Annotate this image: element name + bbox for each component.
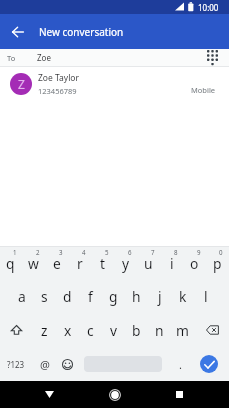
staticText: b: [132, 321, 141, 340]
staticText: u: [144, 254, 153, 273]
button[interactable]: b: [125, 313, 148, 347]
button[interactable]: p: [206, 247, 228, 280]
staticText: 6: [128, 248, 132, 256]
staticText: @: [40, 357, 50, 372]
staticText: 5: [105, 248, 109, 256]
button[interactable]: t: [91, 247, 114, 280]
button[interactable]: s: [33, 280, 56, 313]
button[interactable]: [194, 313, 228, 347]
staticText: 2: [36, 248, 40, 256]
staticText: 1: [13, 248, 17, 256]
staticText: p: [213, 254, 222, 273]
button[interactable]: [56, 347, 79, 381]
button[interactable]: [0, 313, 33, 347]
button[interactable]: u: [137, 247, 160, 280]
button[interactable]: a: [10, 280, 33, 313]
staticText: 8: [174, 248, 178, 256]
button[interactable]: z: [33, 313, 56, 347]
staticText: t: [100, 254, 105, 273]
button[interactable]: l: [194, 280, 217, 313]
staticText: e: [53, 254, 61, 273]
staticText: Zoe Taylor: [38, 72, 80, 84]
staticText: o: [190, 254, 199, 273]
button[interactable]: [17, 381, 82, 408]
button[interactable]: x: [56, 313, 79, 347]
button[interactable]: Z: [0, 67, 229, 101]
button[interactable]: i: [160, 247, 183, 280]
staticText: New conversation: [39, 25, 124, 39]
staticText: d: [63, 287, 72, 306]
staticText: h: [132, 287, 141, 306]
staticText: Mobile: [191, 85, 216, 95]
staticText: i: [170, 254, 174, 273]
staticText: c: [87, 321, 94, 340]
staticText: s: [41, 287, 48, 306]
button[interactable]: [84, 347, 162, 381]
button[interactable]: k: [171, 280, 194, 313]
button[interactable]: q: [0, 247, 22, 280]
staticText: To: [7, 53, 16, 63]
button[interactable]: j: [148, 280, 171, 313]
button[interactable]: [194, 347, 228, 381]
button[interactable]: n: [148, 313, 171, 347]
button[interactable]: v: [102, 313, 125, 347]
staticText: x: [64, 321, 72, 340]
staticText: 10:00: [198, 2, 219, 13]
button[interactable]: h: [125, 280, 148, 313]
button[interactable]: [0, 14, 35, 49]
staticText: l: [204, 287, 208, 306]
staticText: Zoe: [37, 52, 51, 63]
staticText: r: [77, 254, 83, 273]
staticText: ?123: [7, 359, 25, 370]
staticText: 123456789: [38, 86, 77, 96]
staticText: 4: [82, 248, 86, 256]
staticText: 0: [219, 248, 223, 256]
staticText: Z: [18, 76, 25, 92]
staticText: y: [122, 254, 130, 273]
button[interactable]: c: [79, 313, 102, 347]
staticText: z: [41, 321, 48, 340]
button[interactable]: ?123: [0, 347, 33, 381]
button[interactable]: o: [183, 247, 206, 280]
staticText: a: [18, 287, 26, 306]
button[interactable]: .: [167, 347, 194, 381]
staticText: v: [110, 321, 118, 340]
button[interactable]: @: [33, 347, 56, 381]
button[interactable]: e: [45, 247, 68, 280]
button[interactable]: [82, 381, 147, 408]
staticText: 9: [197, 248, 201, 256]
button[interactable]: f: [79, 280, 102, 313]
staticText: n: [155, 321, 164, 340]
button[interactable]: d: [56, 280, 79, 313]
button[interactable]: m: [171, 313, 194, 347]
button[interactable]: [147, 381, 212, 408]
button[interactable]: w: [22, 247, 45, 280]
staticText: j: [158, 287, 162, 306]
staticText: f: [88, 287, 93, 306]
button[interactable]: g: [102, 280, 125, 313]
staticText: w: [28, 254, 39, 273]
staticText: k: [179, 287, 187, 306]
button[interactable]: r: [68, 247, 91, 280]
staticText: q: [6, 254, 15, 273]
staticText: m: [176, 321, 189, 340]
staticText: .: [179, 357, 182, 372]
staticText: 7: [151, 248, 155, 256]
staticText: g: [109, 287, 118, 306]
button[interactable]: y: [114, 247, 137, 280]
button[interactable]: To: [0, 49, 229, 66]
staticText: 3: [59, 248, 63, 256]
